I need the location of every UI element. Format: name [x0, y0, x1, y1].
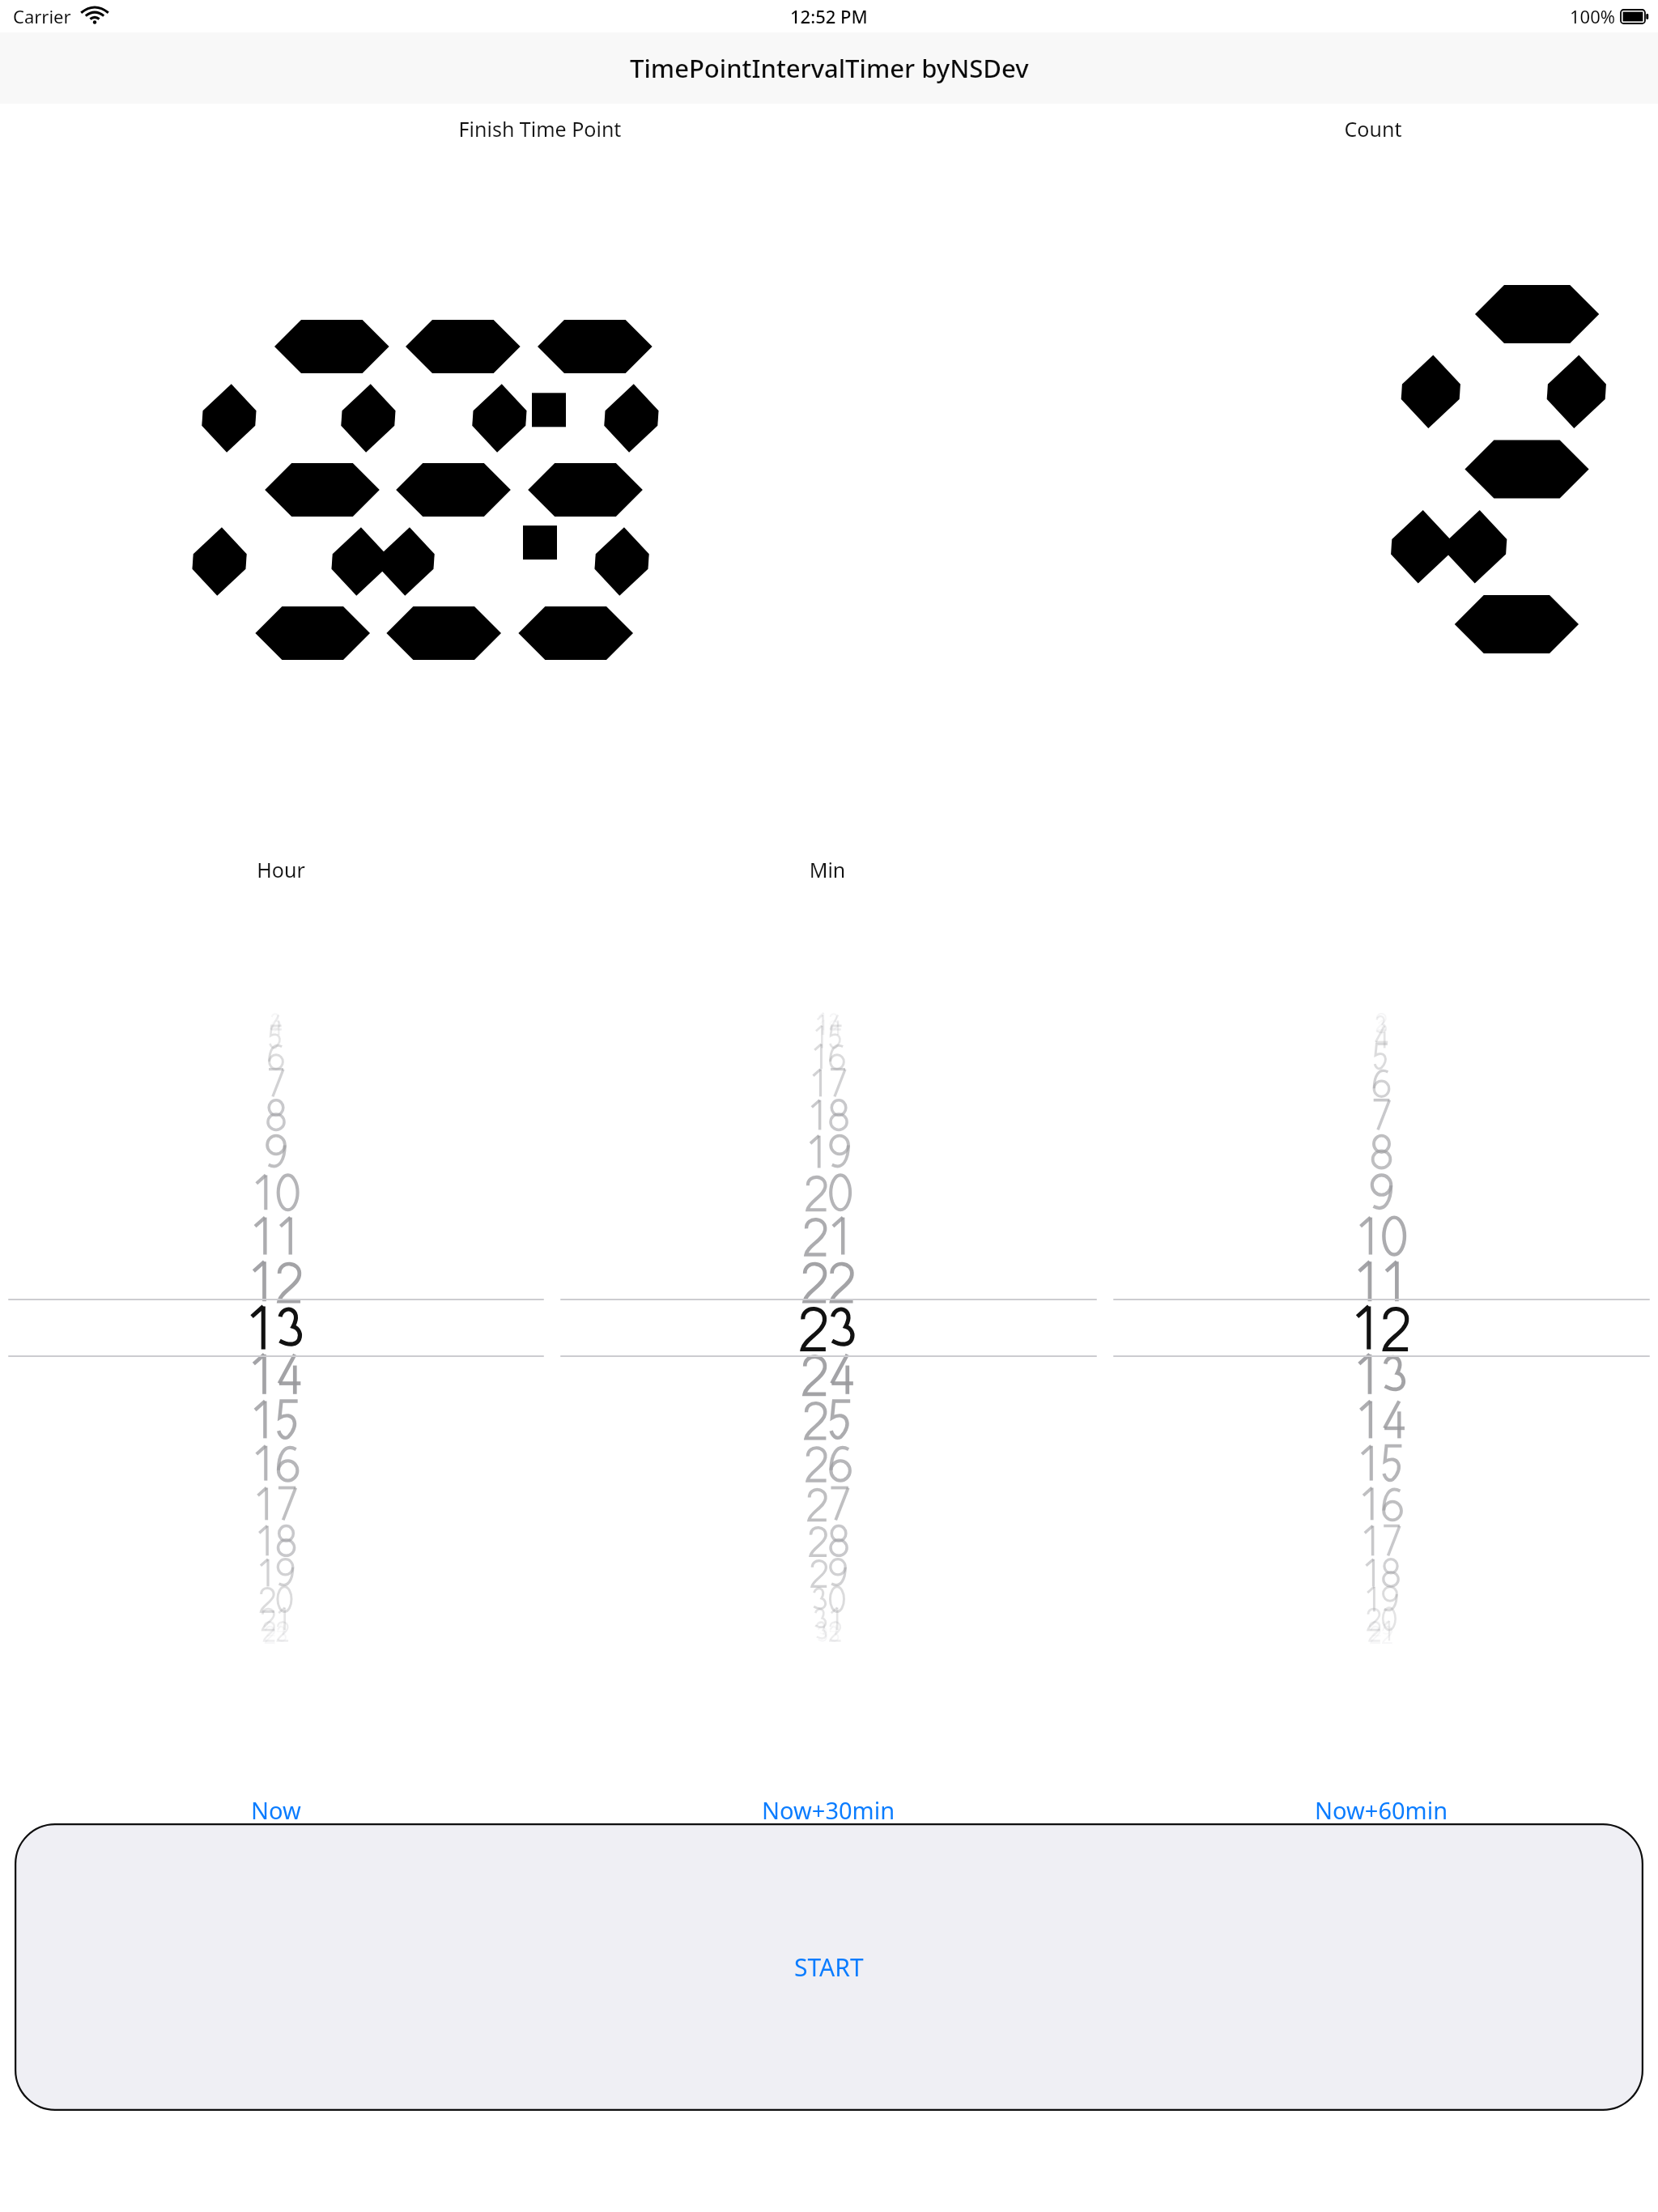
staticText: TimePointIntervalTimer byNSDev: [630, 51, 1029, 85]
staticText: Carrier: [13, 4, 71, 28]
button[interactable]: Minute picker, selected 23: [552, 1004, 1105, 1652]
button[interactable]: Count picker, selected 12: [1105, 1004, 1658, 1652]
staticText: START: [794, 1950, 864, 1984]
staticText: Now+30min: [762, 1794, 895, 1826]
button[interactable]: START: [15, 1823, 1643, 2111]
button[interactable]: Now+60min: [1105, 1785, 1658, 1834]
staticText: 100%: [1570, 4, 1616, 28]
staticText: 12:52 PM: [790, 4, 868, 28]
button[interactable]: Hour picker, selected 13: [0, 1004, 552, 1652]
staticText: Finish Time Point: [402, 115, 678, 143]
staticText: Hour: [224, 856, 338, 883]
staticText: Now: [251, 1794, 301, 1826]
staticText: Now+60min: [1315, 1794, 1448, 1826]
staticText: Min: [771, 856, 884, 883]
button[interactable]: Now+30min: [552, 1785, 1105, 1834]
staticText: Count: [1300, 115, 1446, 143]
button[interactable]: Now: [0, 1785, 552, 1834]
other: Wi-Fi: [83, 7, 106, 25]
other: Battery 100 percent: [1621, 10, 1648, 23]
